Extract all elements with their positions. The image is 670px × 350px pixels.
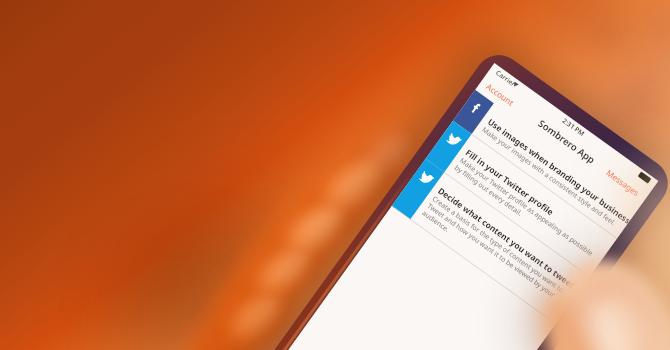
- button[interactable]: [0, 0, 670, 350]
